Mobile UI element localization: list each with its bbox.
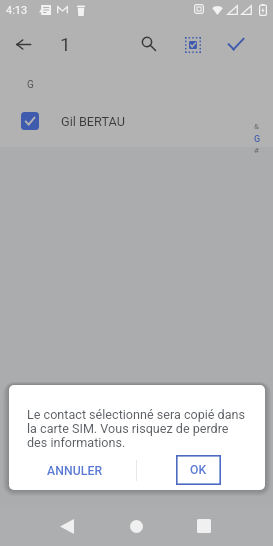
staticText: OK bbox=[190, 463, 207, 477]
button[interactable]: Back bbox=[53, 512, 81, 540]
button[interactable]: Gil BERTAU bbox=[0, 101, 273, 141]
staticText: Gil BERTAU bbox=[61, 114, 125, 129]
staticText: 4:13 bbox=[6, 4, 28, 17]
button[interactable]: Select all bbox=[178, 30, 207, 59]
button[interactable]: OK bbox=[176, 455, 221, 485]
staticText: G bbox=[27, 79, 34, 91]
button[interactable]: Done bbox=[222, 30, 250, 58]
staticText: # bbox=[254, 146, 259, 155]
staticText: ANNULER bbox=[47, 464, 103, 478]
staticText: G bbox=[254, 134, 261, 145]
staticText: Le contact sélectionné sera copié dans l… bbox=[27, 407, 246, 450]
button[interactable]: Back bbox=[9, 30, 37, 58]
button[interactable]: Recents bbox=[190, 512, 218, 540]
button[interactable]: Home bbox=[122, 512, 150, 540]
button[interactable]: Search bbox=[134, 29, 162, 57]
staticText: 1 bbox=[60, 33, 71, 55]
staticText: & bbox=[254, 122, 259, 131]
button[interactable]: ANNULER bbox=[41, 457, 108, 485]
